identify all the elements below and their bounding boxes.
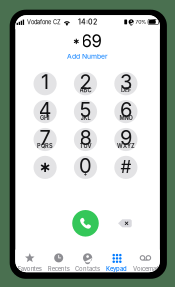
staticText: Recents [48,265,70,272]
button[interactable]: 6 [114,100,137,123]
button[interactable]: 5 [74,100,97,123]
staticText: 69 [82,31,102,51]
staticText: GHI [40,115,50,121]
staticText: 4 [39,98,52,122]
staticText: 2 [79,70,91,94]
staticText: 70% [135,19,146,25]
button[interactable]: 2 [74,72,97,95]
staticText: Voicemail [133,265,158,272]
staticText: 6 [120,98,132,122]
button[interactable]: Favorites [15,250,44,272]
button[interactable]: 3 [114,72,137,95]
staticText: 7 [40,126,51,150]
button[interactable]: # [114,156,137,179]
staticText: ABC [79,87,91,93]
button[interactable]: 0 [74,156,97,179]
staticText: DEF [121,87,131,93]
staticText: # [120,156,131,177]
staticText: Favorites [18,265,42,272]
staticText: PQRS [37,142,53,149]
staticText: JKL [80,115,90,121]
button[interactable]: Voicemail [131,250,160,272]
staticText: MNO [119,115,132,121]
staticText: 5 [79,98,91,122]
staticText: TUV [79,142,91,149]
button[interactable]: Contacts [73,250,102,272]
button[interactable]: Keypad [102,250,131,272]
button[interactable]: 8 [74,128,97,151]
staticText: 8 [79,126,91,150]
staticText: 0 [79,153,92,178]
staticText: Add Number [67,52,108,60]
button[interactable]: Call [72,210,99,237]
staticText: 1 [41,70,49,94]
staticText: 3 [120,70,132,94]
button[interactable]: 1 [33,72,57,95]
staticText: WXYZ [117,142,135,149]
staticText: Vodafone CZ [27,19,61,26]
button[interactable]: Recents [44,250,73,272]
button[interactable]: Delete [113,210,136,237]
staticText: 9 [120,126,132,150]
staticText: + [83,171,87,177]
button[interactable]: 7 [33,128,57,151]
staticText: 14:02 [78,18,97,26]
button[interactable]: 4 [33,100,57,123]
staticText: Keypad [106,265,127,272]
button[interactable]: 9 [114,128,137,151]
button[interactable]: Add Number [59,52,117,61]
button[interactable]: Star [33,156,57,179]
staticText: Contacts [75,265,100,272]
